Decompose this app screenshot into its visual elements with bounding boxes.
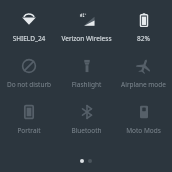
button[interactable]: Do not disturb (0, 54, 58, 91)
staticText: Bluetooth (59, 126, 114, 135)
button[interactable]: Portrait (0, 100, 58, 137)
button[interactable]: Moto Mods (115, 100, 172, 137)
button[interactable]: Verizon Wireless (58, 8, 115, 45)
staticText: Moto Mods (116, 126, 171, 135)
button[interactable]: Flashlight (58, 54, 115, 91)
button[interactable]: Bluetooth (58, 100, 115, 137)
staticText: Portrait (1, 126, 57, 135)
button[interactable]: Airplane mode (115, 54, 172, 91)
staticText: Flashlight (59, 80, 114, 89)
staticText: SHIELD_24 (1, 34, 57, 43)
button[interactable]: 82% (115, 8, 172, 45)
staticText: Do not disturb (1, 80, 57, 89)
button[interactable]: SHIELD_24 (0, 8, 58, 45)
staticText: Airplane mode (116, 80, 171, 89)
staticText: Verizon Wireless (59, 34, 114, 43)
staticText: 82% (116, 34, 171, 43)
